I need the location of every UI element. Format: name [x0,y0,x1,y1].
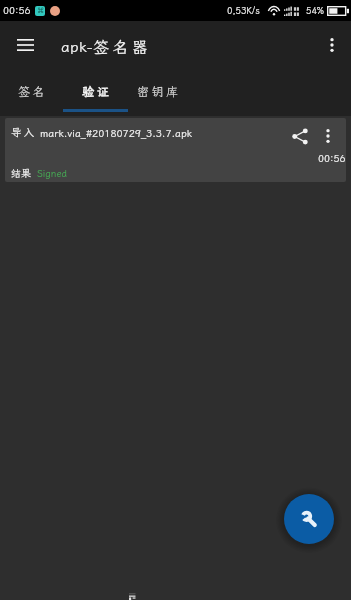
button[interactable]: 导入 [5,118,346,182]
staticText: ⌘ [37,7,44,15]
staticText: 导入 [11,125,36,139]
button[interactable]: Navigation menu [8,21,42,69]
staticText: 0,53K/s [227,5,260,17]
staticText: 54% [306,5,325,17]
staticText: 密钥库 [137,84,181,100]
button[interactable]: 签名 [5,69,61,114]
staticText: 00:56 [3,4,31,17]
staticText: Signed [37,167,68,180]
button[interactable]: More options [313,21,351,69]
button[interactable]: Share [288,124,312,148]
staticText: apk- [61,37,93,57]
button[interactable]: 验证 [69,69,125,114]
staticText: 签名 [18,84,48,100]
button[interactable]: Item options [316,124,340,148]
staticText: 结果 [11,167,31,180]
button[interactable]: 密钥库 [131,69,187,114]
staticText: 签名器 [93,36,152,57]
staticText: mark.via_#20180729_3.3.7.apk [40,126,192,139]
staticText: 验证 [82,84,112,100]
staticText: 00:56 [318,152,346,165]
button[interactable]: Sign APK [284,494,334,544]
